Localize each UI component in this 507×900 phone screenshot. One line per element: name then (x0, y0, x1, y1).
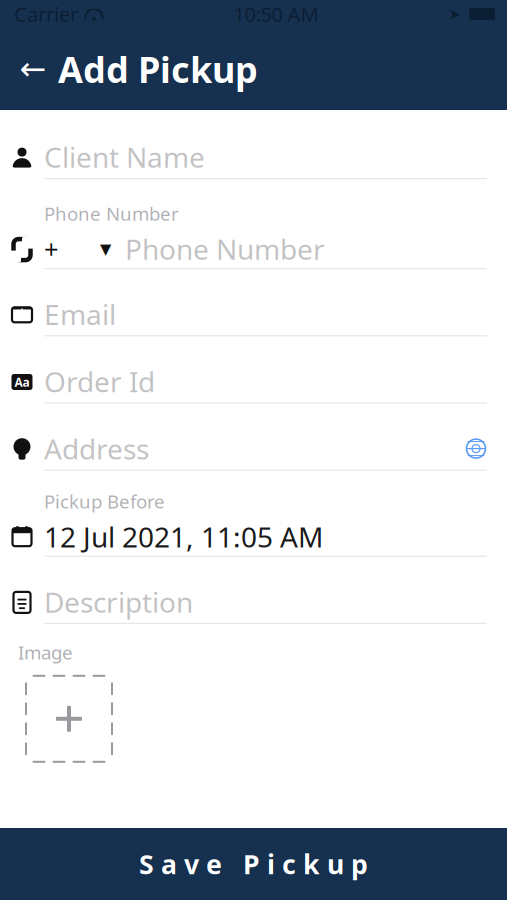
button[interactable]: Add image (25, 675, 113, 763)
staticText: Phone Number (44, 201, 179, 226)
button[interactable]: Description (0, 581, 507, 624)
button[interactable]: Aa (0, 360, 507, 404)
staticText: Carrier (14, 1, 78, 27)
staticText: Order Id (44, 363, 155, 400)
staticText: S a v e P i c k u p (139, 846, 368, 882)
staticText: Add Pickup (58, 45, 258, 93)
button[interactable]: S a v e P i c k u p (0, 828, 507, 900)
staticText: 10:50 AM (233, 1, 318, 27)
button[interactable]: Email (0, 293, 507, 336)
button[interactable]: Address (0, 428, 507, 471)
staticText: Pickup Before (44, 489, 165, 514)
staticText: Email (44, 296, 116, 333)
staticText: ▼ (100, 241, 111, 257)
button[interactable]: Back (10, 46, 56, 92)
staticText: Client Name (44, 138, 205, 176)
button[interactable]: Phone Number (0, 201, 507, 269)
staticText: Phone Number (125, 230, 325, 268)
button[interactable]: Client Name (0, 136, 507, 179)
staticText: ➤ (448, 5, 461, 23)
staticText: ← (19, 51, 46, 87)
staticText: 12 Jul 2021, 11:05 AM (44, 518, 323, 555)
staticText: + (44, 232, 58, 266)
staticText: Image (18, 640, 73, 665)
staticText: Address (44, 430, 149, 467)
staticText: Aa (14, 374, 29, 390)
staticText: Description (44, 583, 193, 620)
button[interactable]: Pickup Before (0, 489, 507, 557)
